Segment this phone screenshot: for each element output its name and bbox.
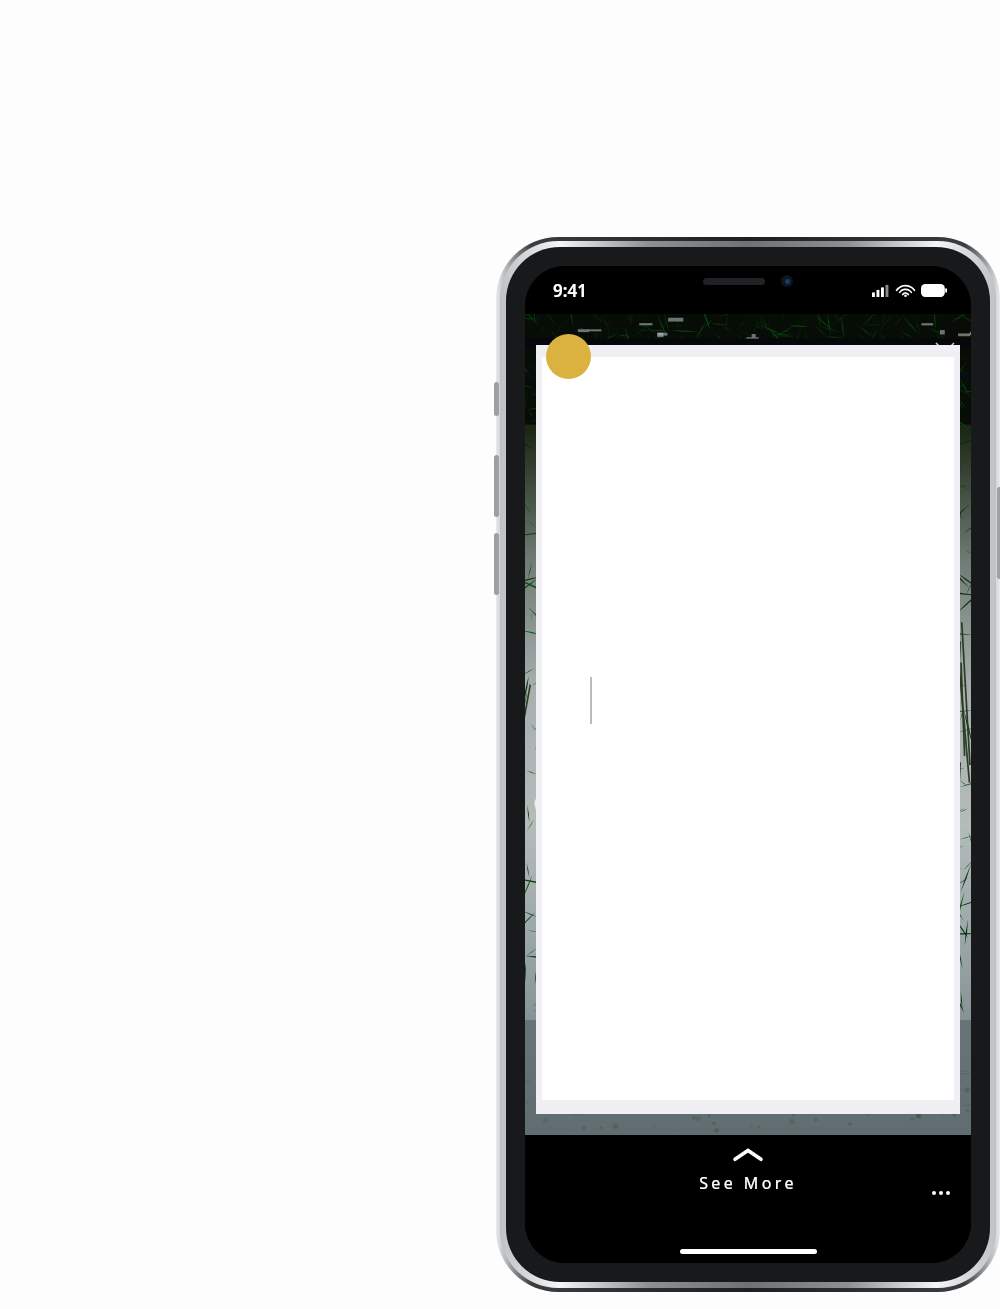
button[interactable]: Profile: [546, 334, 591, 379]
staticText: yourname: [593, 340, 685, 366]
button[interactable]: Close: [925, 332, 965, 372]
staticText: 9:41: [553, 279, 587, 302]
button[interactable]: See More: [699, 1149, 797, 1194]
staticText: See More: [699, 1172, 797, 1194]
button[interactable]: [536, 345, 960, 1114]
button[interactable]: More options: [919, 1171, 963, 1215]
